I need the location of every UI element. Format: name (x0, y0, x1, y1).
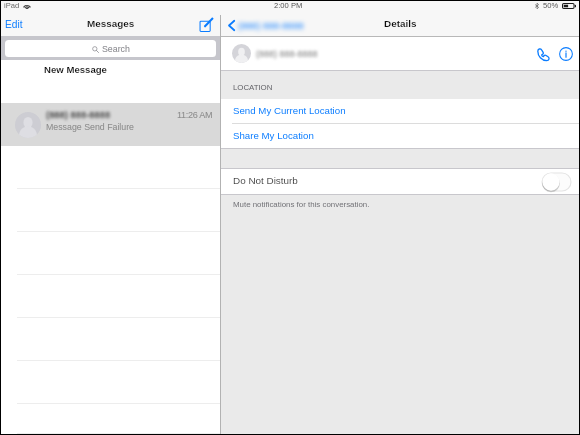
staticText: (888) 888-8888 (238, 20, 304, 31)
staticText: Messages (87, 18, 135, 29)
button[interactable]: Back (221, 18, 309, 33)
button[interactable]: Compose new message (199, 17, 214, 32)
staticText: Message Send Failure (46, 122, 135, 132)
staticText: Search (102, 44, 130, 54)
button[interactable]: Search (5, 40, 216, 57)
staticText: 11:26 AM (177, 110, 213, 120)
button[interactable]: Do Not Disturb toggle, off (542, 173, 571, 191)
staticText: New Message (44, 64, 107, 75)
button[interactable]: Send My Current Location (221, 99, 579, 123)
staticText: Mute notifications for this conversation… (233, 200, 370, 209)
staticText: 2:00 PM (274, 1, 303, 9)
staticText: Do Not Disturb (233, 175, 298, 186)
button[interactable]: (888) 888-8888 (1, 103, 220, 146)
button[interactable]: New Message (1, 60, 220, 103)
button[interactable]: Do Not Disturb (221, 169, 579, 194)
staticText: Share My Location (233, 130, 314, 141)
other: Back (228, 20, 235, 31)
staticText: Details (384, 18, 417, 29)
staticText: Send My Current Location (233, 105, 346, 116)
staticText: (888) 888-8888 (46, 109, 111, 120)
button[interactable] (1, 404, 220, 434)
staticText: LOCATION (233, 83, 273, 92)
staticText: iPad (4, 1, 20, 9)
button[interactable]: Edit (1, 17, 29, 35)
button[interactable]: Call (536, 47, 550, 61)
button[interactable]: Share My Location (221, 124, 579, 148)
staticText: 50% (543, 1, 559, 9)
staticText: (888) 888-8888 (256, 49, 318, 59)
button[interactable]: Info (559, 47, 573, 61)
staticText: Edit (5, 19, 23, 30)
